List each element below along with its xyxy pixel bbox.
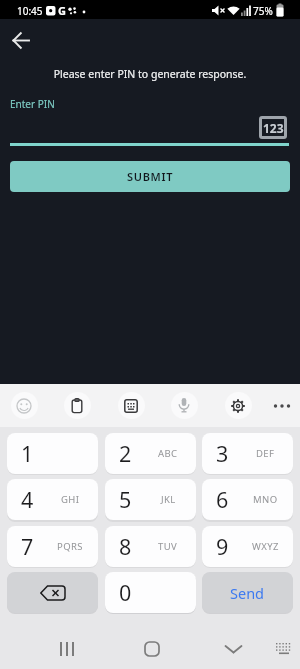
staticText: 0 [119, 578, 132, 607]
button[interactable]: 7 [7, 526, 98, 567]
staticText: SUBMIT [127, 169, 174, 184]
button[interactable]: 9 [202, 526, 293, 567]
staticText: Please enter PIN to generate response. [0, 67, 300, 81]
button[interactable]: 2 [105, 433, 196, 474]
button[interactable] [7, 572, 98, 613]
button[interactable]: SUBMIT [10, 161, 290, 192]
button[interactable]: 8 [105, 526, 196, 567]
button[interactable]: 6 [202, 479, 293, 520]
staticText: 10:45 [17, 4, 43, 18]
staticText: DEF [256, 447, 275, 460]
button[interactable] [118, 392, 145, 419]
button[interactable] [171, 392, 198, 419]
staticText: 8 [119, 532, 132, 561]
button[interactable] [4, 24, 38, 58]
button[interactable]: 3 [202, 433, 293, 474]
staticText: 123 [263, 120, 284, 136]
button[interactable] [64, 392, 91, 419]
button[interactable] [268, 631, 300, 663]
button[interactable] [11, 392, 38, 419]
staticText: MNO [253, 493, 278, 506]
button[interactable]: 1 [7, 433, 98, 474]
button[interactable]: Send [202, 572, 293, 613]
staticText: 7 [21, 532, 34, 561]
button[interactable] [215, 631, 251, 667]
staticText: TUV [158, 540, 178, 553]
staticText: Enter PIN [10, 97, 55, 111]
staticText: GHI [61, 493, 80, 506]
staticText: 9 [216, 532, 229, 561]
button[interactable] [50, 631, 86, 667]
staticText: 5 [119, 485, 132, 514]
staticText: ABC [158, 447, 178, 460]
button[interactable]: 4 [7, 479, 98, 520]
staticText: 75% [253, 4, 273, 18]
staticText: 4 [21, 485, 34, 514]
button[interactable] [134, 631, 170, 667]
staticText: 1 [21, 439, 34, 468]
staticText: 3 [216, 439, 229, 468]
staticText: G [58, 3, 66, 18]
button[interactable] [273, 403, 291, 409]
staticText: 2 [119, 439, 132, 468]
staticText: 6 [216, 485, 229, 514]
button[interactable] [225, 392, 252, 419]
button[interactable]: 5 [105, 479, 196, 520]
button[interactable]: 0 [105, 572, 196, 613]
staticText: WXYZ [252, 540, 279, 553]
staticText: Send [230, 583, 265, 603]
staticText: JKL [161, 493, 176, 506]
staticText: PQRS [57, 540, 83, 553]
